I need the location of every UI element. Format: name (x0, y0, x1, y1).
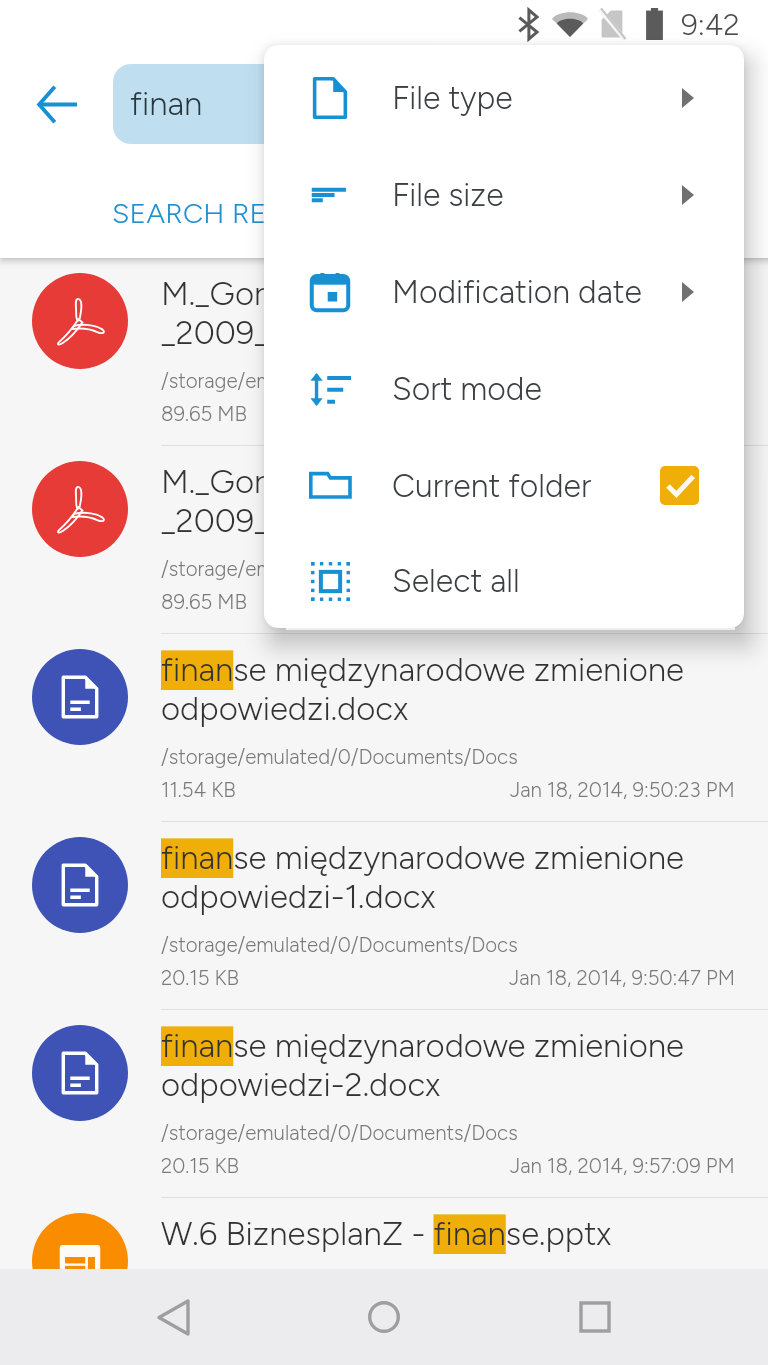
button[interactable]: M._Gorynia_-_Kompendium_wiedzy (0, 258, 768, 446)
staticText: Jan 18, 2014, 9:50:47 PM (509, 966, 735, 991)
staticText: finanse międzynarodowe zmienione (161, 650, 684, 690)
staticText: /storage/emulated/0/Documents/Docs (161, 933, 518, 958)
button[interactable]: Back (21, 68, 93, 140)
button[interactable]: SEARCH RESULTS (0, 174, 400, 252)
staticText: odpowiedzi.docx (161, 689, 409, 729)
button[interactable]: Modification date (264, 243, 744, 340)
button[interactable]: finan (113, 64, 633, 144)
button[interactable]: File size (264, 146, 744, 243)
staticText: /storage/emulated/0/Download (161, 369, 450, 394)
staticText: finan (130, 84, 203, 124)
staticText: SEARCH RESULTS (112, 196, 350, 230)
button[interactable]: Recent apps (554, 1269, 636, 1365)
button[interactable]: Back (132, 1269, 214, 1365)
button[interactable]: Sort mode (264, 340, 744, 437)
staticText: File type (392, 79, 513, 117)
staticText: Jan 18, 2014, 9:57:09 PM (510, 1154, 735, 1179)
staticText: Select all (392, 562, 520, 600)
staticText: /storage/emulated/0/Documents/Docs (161, 1121, 518, 1146)
staticText: W.6 BiznesplanZ - finanse.pptx (161, 1214, 612, 1254)
staticText: odpowiedzi-2.docx (161, 1065, 441, 1105)
button[interactable]: File type (264, 49, 744, 146)
staticText: M._Gorynia_-_Kompendium_wiedzy (161, 462, 679, 502)
staticText: 9:42 (681, 6, 740, 42)
staticText: 89.65 MB (161, 590, 248, 615)
button[interactable]: M._Gorynia_-_Kompendium_wiedzy (0, 446, 768, 634)
button[interactable]: finanse międzynarodowe zmienione (0, 634, 768, 822)
staticText: /storage/emulated/0/Documents (161, 1309, 464, 1334)
staticText: /storage/emulated/0/Download (161, 557, 450, 582)
button[interactable]: Home (343, 1269, 425, 1365)
staticText: odpowiedzi-1.docx (161, 877, 436, 917)
staticText: 89.65 MB (161, 402, 248, 427)
staticText: Sort mode (392, 370, 542, 408)
button[interactable]: Select all (264, 534, 744, 628)
staticText: 20.15 KB (161, 1154, 240, 1179)
staticText: _2009_.pdf (161, 313, 326, 353)
staticText: /storage/emulated/0/Documents/Docs (161, 745, 518, 770)
staticText: _2009_.pdf (161, 501, 326, 541)
staticText: M._Gorynia_-_Kompendium_wiedzy (161, 274, 679, 314)
staticText: Modification date (392, 273, 642, 311)
staticText: finanse międzynarodowe zmienione (161, 838, 684, 878)
staticText: finanse międzynarodowe zmienione (161, 1026, 684, 1066)
staticText: 11.54 KB (161, 778, 236, 803)
staticText: 20.15 KB (161, 966, 240, 991)
staticText: Current folder (392, 467, 592, 505)
button[interactable]: finanse międzynarodowe zmienione (0, 822, 768, 1010)
staticText: Jan 18, 2014, 9:50:23 PM (510, 778, 735, 803)
staticText: File size (392, 176, 504, 214)
button[interactable]: Current folder (264, 437, 744, 534)
button[interactable]: finanse międzynarodowe zmienione (0, 1010, 768, 1198)
button[interactable]: W.6 BiznesplanZ - finanse.pptx (0, 1198, 768, 1365)
